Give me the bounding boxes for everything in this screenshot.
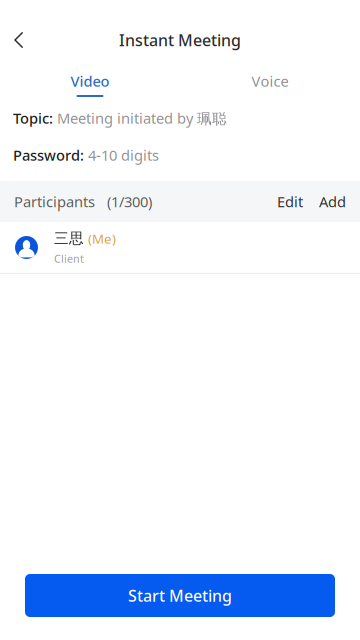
staticText: Start Meeting xyxy=(128,585,232,606)
staticText: Meeting initiated by 珮聪 xyxy=(57,108,227,128)
staticText: Password: xyxy=(13,145,88,165)
staticText: Topic: xyxy=(13,108,57,128)
staticText: Voice xyxy=(251,71,288,91)
staticText: Edit xyxy=(277,192,303,211)
button[interactable]: Start Meeting xyxy=(25,574,335,617)
button[interactable]: 三思 xyxy=(0,222,360,274)
button[interactable]: Voice xyxy=(180,62,360,104)
staticText: 4-10 digits xyxy=(88,145,159,165)
staticText: Video xyxy=(70,71,109,91)
button[interactable]: Video xyxy=(0,62,180,104)
button[interactable]: Add xyxy=(311,181,346,221)
staticText: (Me) xyxy=(88,230,116,247)
staticText: Client xyxy=(54,251,84,266)
button[interactable]: Back xyxy=(0,18,38,62)
button[interactable]: Edit xyxy=(269,181,311,221)
staticText: Add xyxy=(319,192,346,211)
staticText: Participants (1/300) xyxy=(14,192,152,211)
staticText: 三思 xyxy=(54,229,84,247)
staticText: Instant Meeting xyxy=(119,29,241,51)
